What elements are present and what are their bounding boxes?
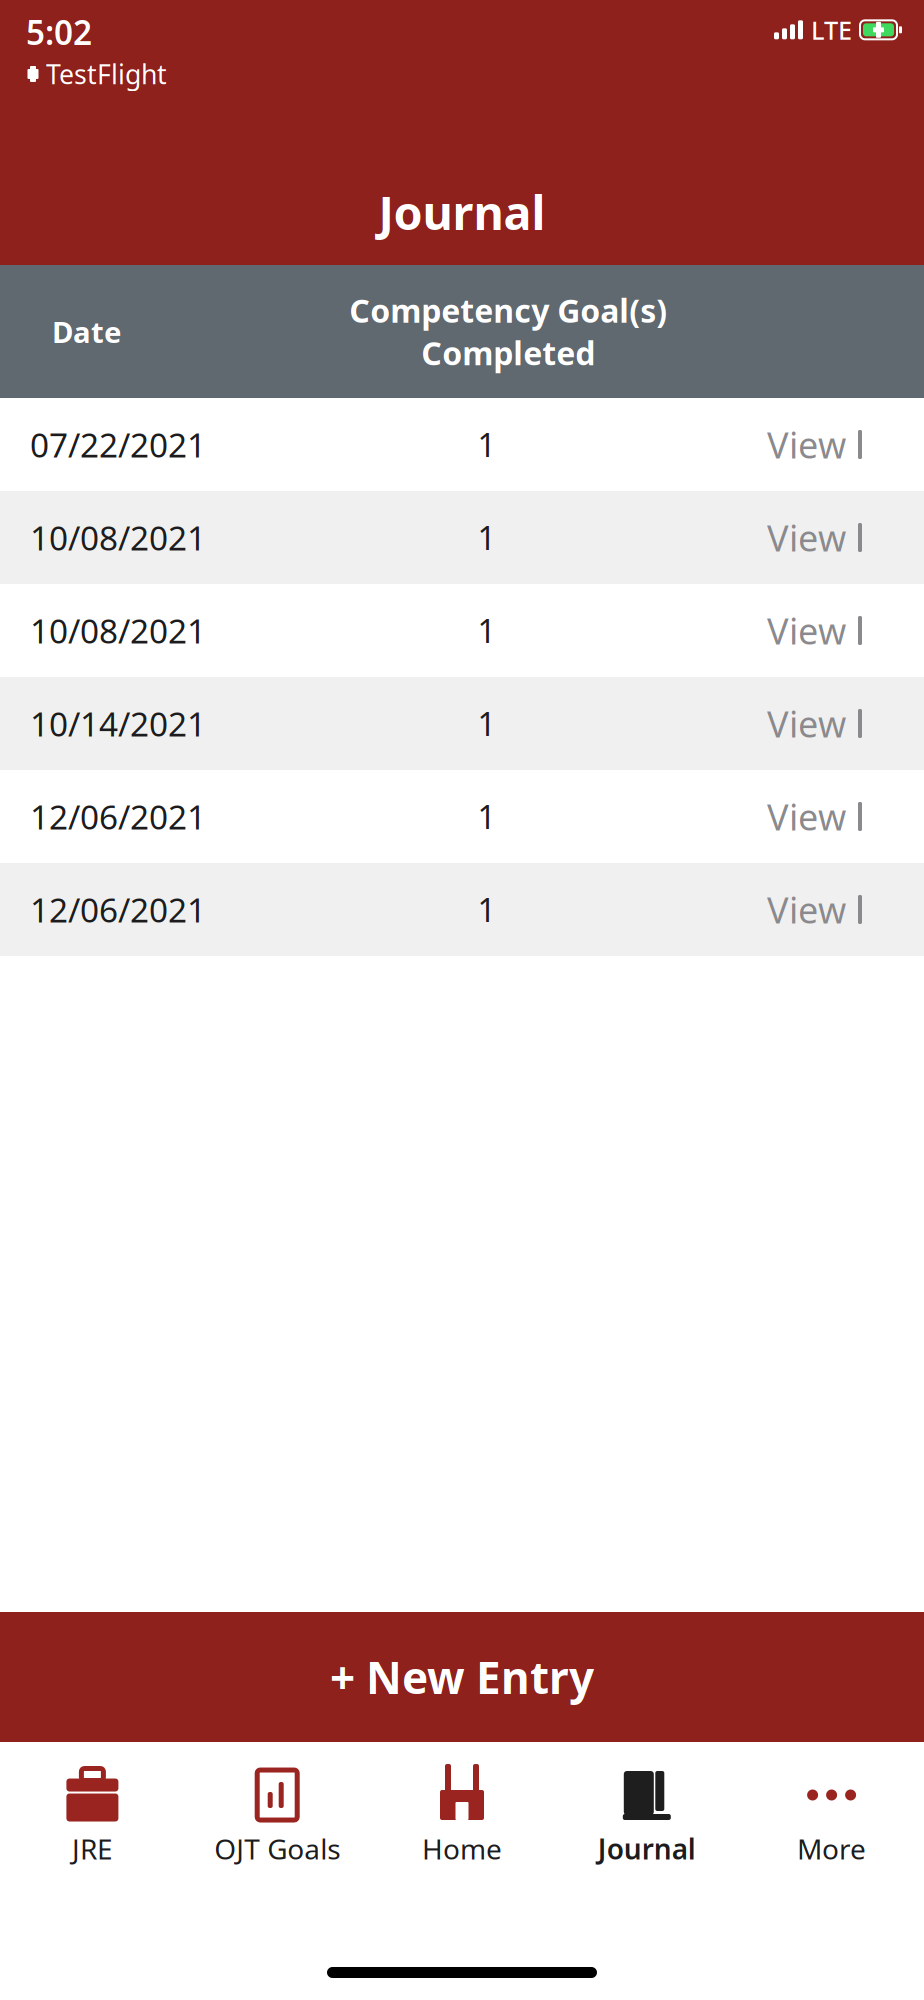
staticText: 10/08/2021 [30, 515, 206, 560]
button[interactable]: Home [370, 1766, 554, 1871]
staticText: Home [422, 1830, 502, 1867]
button[interactable]: 10/08/2021 [0, 491, 924, 584]
staticText: 07/22/2021 [30, 422, 206, 467]
staticText: Date [52, 312, 122, 351]
staticText: Journal [598, 1830, 696, 1867]
button[interactable]: JRE [0, 1766, 185, 1871]
button[interactable]: 10/14/2021 [0, 677, 924, 770]
button[interactable]: 07/22/2021 [0, 398, 924, 491]
staticText: LTE [811, 13, 852, 47]
button[interactable]: More [739, 1766, 924, 1871]
staticText: 10/14/2021 [30, 701, 206, 746]
staticText: 1 [477, 888, 495, 931]
staticText: 1 [477, 795, 495, 838]
staticText: 10/08/2021 [30, 608, 206, 653]
button[interactable]: Journal [554, 1766, 739, 1871]
staticText: 1 [477, 423, 495, 466]
staticText: TestFlight [46, 56, 167, 92]
button[interactable]: 10/08/2021 [0, 584, 924, 677]
staticText: View [767, 700, 846, 747]
staticText: 12/06/2021 [30, 887, 206, 932]
button[interactable]: OJT Goals [185, 1766, 370, 1871]
staticText: 1 [477, 516, 495, 559]
button[interactable]: 12/06/2021 [0, 770, 924, 863]
button[interactable]: 12/06/2021 [0, 863, 924, 956]
staticText: 12/06/2021 [30, 794, 206, 839]
staticText: OJT Goals [214, 1830, 340, 1867]
staticText: Journal [378, 181, 545, 243]
staticText: 1 [477, 609, 495, 652]
staticText: 5:02 [26, 10, 92, 54]
staticText: View [767, 793, 846, 840]
button[interactable]: + New Entry [0, 1612, 924, 1742]
staticText: View [767, 886, 846, 933]
staticText: More [797, 1830, 866, 1867]
staticText: JRE [72, 1830, 113, 1867]
staticText: View [767, 421, 846, 468]
staticText: 1 [477, 702, 495, 745]
staticText: View [767, 514, 846, 561]
staticText: Competency Goal(s) Completed [349, 289, 667, 374]
staticText: View [767, 607, 846, 654]
staticText: + New Entry [330, 1648, 594, 1706]
